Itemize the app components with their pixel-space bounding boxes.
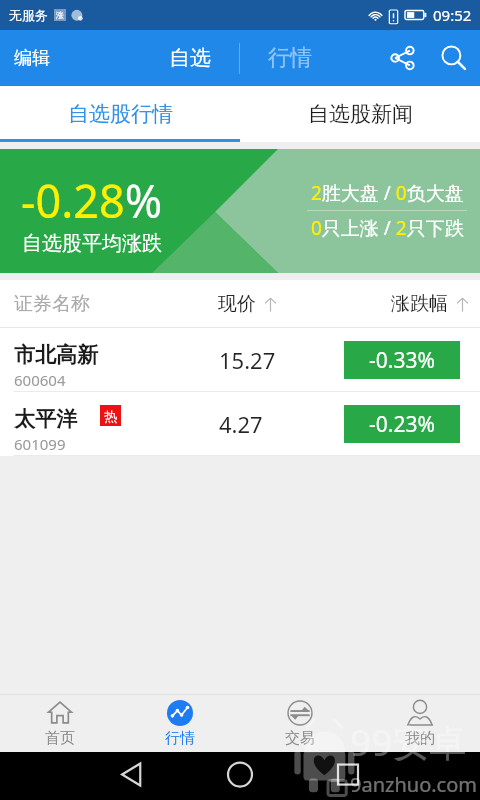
staticText: 自选 — [169, 45, 211, 71]
staticText: 市北高新 — [14, 342, 98, 368]
button[interactable]: 自选股行情 — [0, 86, 240, 142]
button[interactable]: 首页 — [0, 695, 120, 752]
staticText: 9anzhuo.com — [350, 771, 477, 798]
staticText: 热 — [104, 408, 117, 424]
button[interactable]: 交易 — [240, 695, 360, 752]
staticText: 2胜大盘 / 0负大盘 — [311, 180, 464, 206]
staticText: 涨跌幅 — [391, 292, 448, 316]
button[interactable]: 编辑 — [0, 30, 64, 86]
staticText: 现价 — [218, 292, 256, 316]
staticText: -0.28% — [21, 170, 163, 231]
staticText: 行情 — [165, 729, 195, 748]
staticText: 涨 — [56, 10, 64, 20]
button[interactable]: 市北高新 — [0, 328, 480, 392]
staticText: 太平洋 — [14, 406, 77, 432]
staticText: 09:52 — [433, 5, 472, 25]
button[interactable]: 太平洋 — [0, 392, 480, 456]
button[interactable]: 自选 — [141, 33, 239, 83]
staticText: -0.33% — [369, 346, 435, 375]
button[interactable]: 行情 — [120, 695, 240, 752]
staticText: 自选股平均涨跌 — [22, 231, 162, 256]
button[interactable]: Share — [376, 30, 428, 86]
staticText: 4.27 — [219, 409, 263, 439]
staticText: 行情 — [268, 44, 312, 72]
staticText: 601099 — [14, 434, 66, 454]
button[interactable]: 自选股新闻 — [240, 86, 480, 142]
staticText: 600604 — [14, 370, 66, 390]
staticText: 首页 — [45, 729, 75, 748]
staticText: 证券名称 — [14, 292, 90, 316]
staticText: 无服务 — [9, 7, 48, 23]
button[interactable]: 行情 — [240, 32, 340, 84]
staticText: 自选股行情 — [68, 101, 173, 127]
button[interactable]: 我的 — [360, 695, 480, 752]
staticText: 我的 — [405, 729, 435, 748]
staticText: -0.23% — [369, 410, 435, 439]
staticText: 交易 — [285, 729, 315, 748]
button[interactable]: Search — [428, 30, 480, 86]
staticText: 0只上涨 / 2只下跌 — [311, 215, 464, 241]
staticText: 99安卓 — [350, 716, 467, 767]
staticText: 15.27 — [219, 345, 276, 375]
staticText: 编辑 — [14, 47, 50, 70]
staticText: 自选股新闻 — [308, 101, 413, 127]
